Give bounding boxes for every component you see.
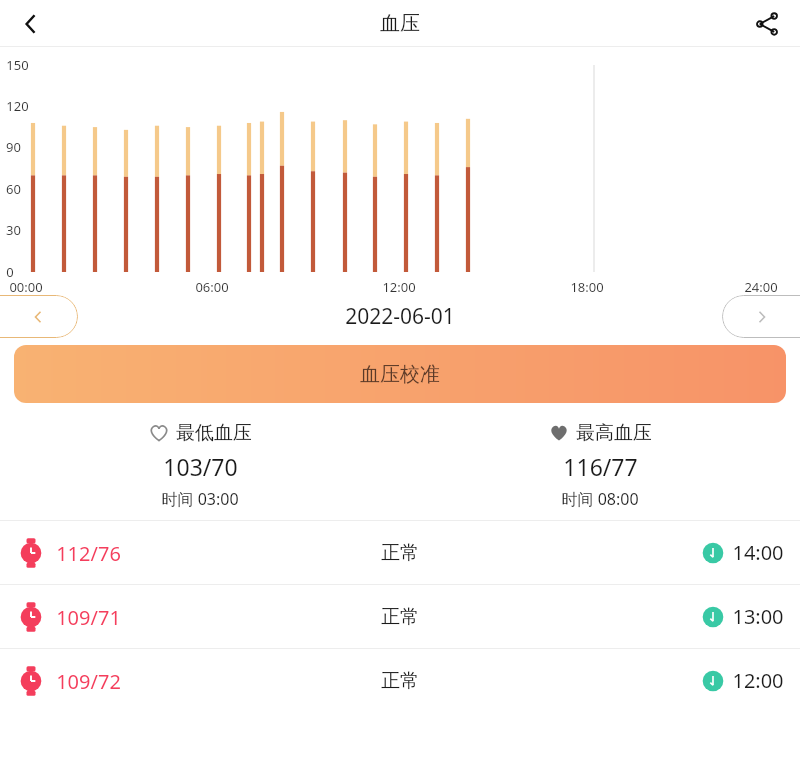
staticText: 12:00 (732, 667, 784, 694)
staticText: 109/71 (56, 604, 121, 631)
staticText: 60 (6, 180, 21, 198)
button[interactable]: 血压校准 (14, 345, 786, 403)
staticText: 18:00 (570, 278, 604, 296)
button[interactable]: 最高血压 (400, 421, 800, 510)
staticText: 正常 (381, 605, 419, 629)
staticText: 109/72 (56, 668, 121, 695)
button[interactable]: 最低血压 (0, 421, 400, 510)
button[interactable]: Share (744, 1, 790, 47)
staticText: 06:00 (195, 278, 229, 296)
staticText: 112/76 (56, 540, 121, 567)
staticText: 120 (6, 97, 29, 115)
button[interactable]: Next day (722, 295, 800, 338)
staticText: 30 (6, 221, 21, 239)
staticText: 12:00 (382, 278, 416, 296)
staticText: 血压校准 (360, 362, 440, 387)
staticText: 13:00 (732, 603, 784, 630)
staticText: 24:00 (744, 278, 778, 296)
button[interactable]: Back (8, 1, 54, 47)
staticText: 150 (6, 56, 29, 74)
staticText: 血压 (380, 11, 420, 36)
button[interactable]: 112/76 (0, 521, 800, 584)
staticText: 正常 (381, 669, 419, 693)
staticText: 最高血压 (576, 421, 652, 445)
staticText: 116/77 (563, 451, 638, 482)
staticText: 时间 03:00 (161, 488, 239, 510)
staticText: 0 (6, 263, 14, 281)
staticText: 时间 08:00 (561, 488, 639, 510)
button[interactable]: Previous day (0, 295, 78, 338)
button[interactable]: 109/71 (0, 585, 800, 648)
staticText: 00:00 (9, 278, 43, 296)
staticText: 90 (6, 138, 21, 156)
staticText: 2022-06-01 (345, 302, 455, 331)
staticText: 正常 (381, 541, 419, 565)
staticText: 最低血压 (176, 421, 252, 445)
staticText: 14:00 (732, 539, 784, 566)
button[interactable]: 109/72 (0, 649, 800, 712)
staticText: 103/70 (163, 451, 238, 482)
